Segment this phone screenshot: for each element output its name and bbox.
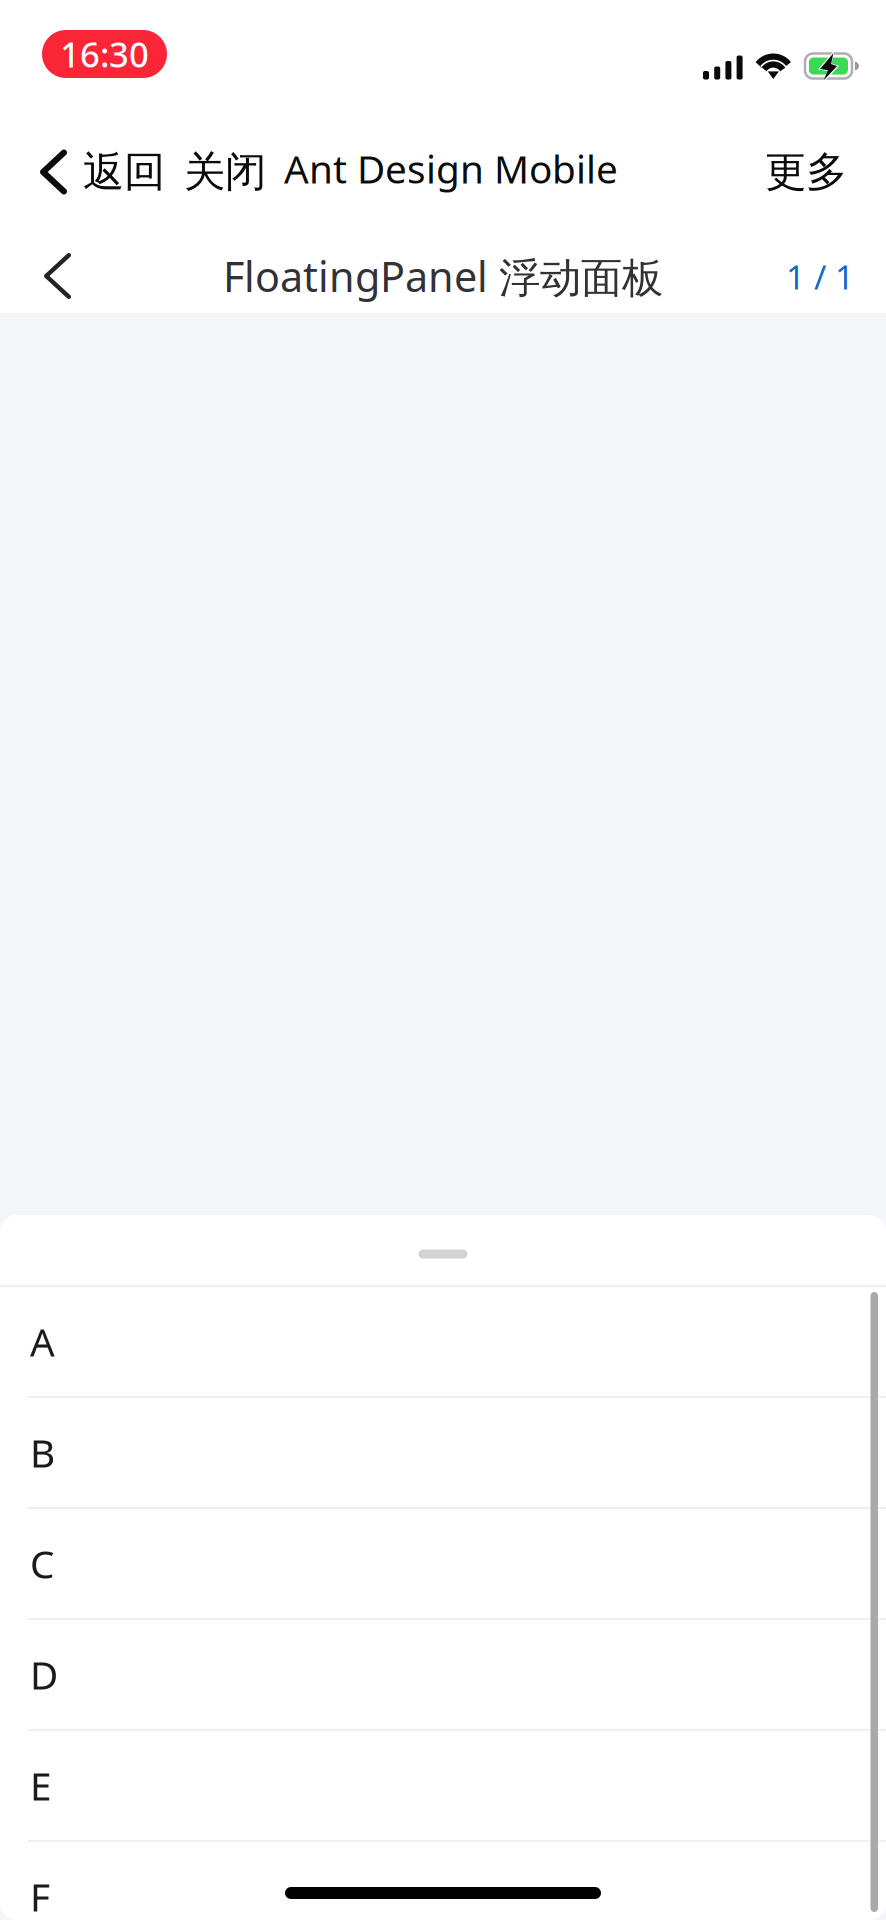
staticText: F (30, 1871, 50, 1920)
staticText: C (30, 1538, 54, 1589)
staticText: 更多 (765, 147, 847, 197)
button[interactable]: F (0, 1842, 886, 1920)
button[interactable]: C (0, 1509, 886, 1620)
button[interactable]: D (0, 1620, 886, 1731)
button[interactable]: Back (0, 235, 95, 310)
button[interactable]: E (0, 1731, 886, 1842)
staticText: 1 / 1 (786, 254, 854, 299)
staticText: Ant Design Mobile (284, 143, 618, 194)
staticText: FloatingPanel 浮动面板 (223, 248, 663, 303)
button[interactable]: 关闭 (165, 131, 266, 213)
staticText: D (30, 1649, 58, 1700)
staticText: E (30, 1760, 51, 1811)
staticText: 16:30 (60, 31, 149, 77)
staticText: A (30, 1316, 55, 1367)
staticText: 关闭 (184, 147, 266, 197)
button[interactable]: 更多 (765, 131, 847, 213)
button[interactable]: A (0, 1287, 886, 1398)
staticText: 返回 (83, 147, 165, 197)
button[interactable]: B (0, 1398, 886, 1509)
button[interactable]: 1 / 1 (786, 234, 886, 311)
staticText: B (30, 1427, 55, 1478)
button[interactable]: 返回 (40, 131, 165, 213)
